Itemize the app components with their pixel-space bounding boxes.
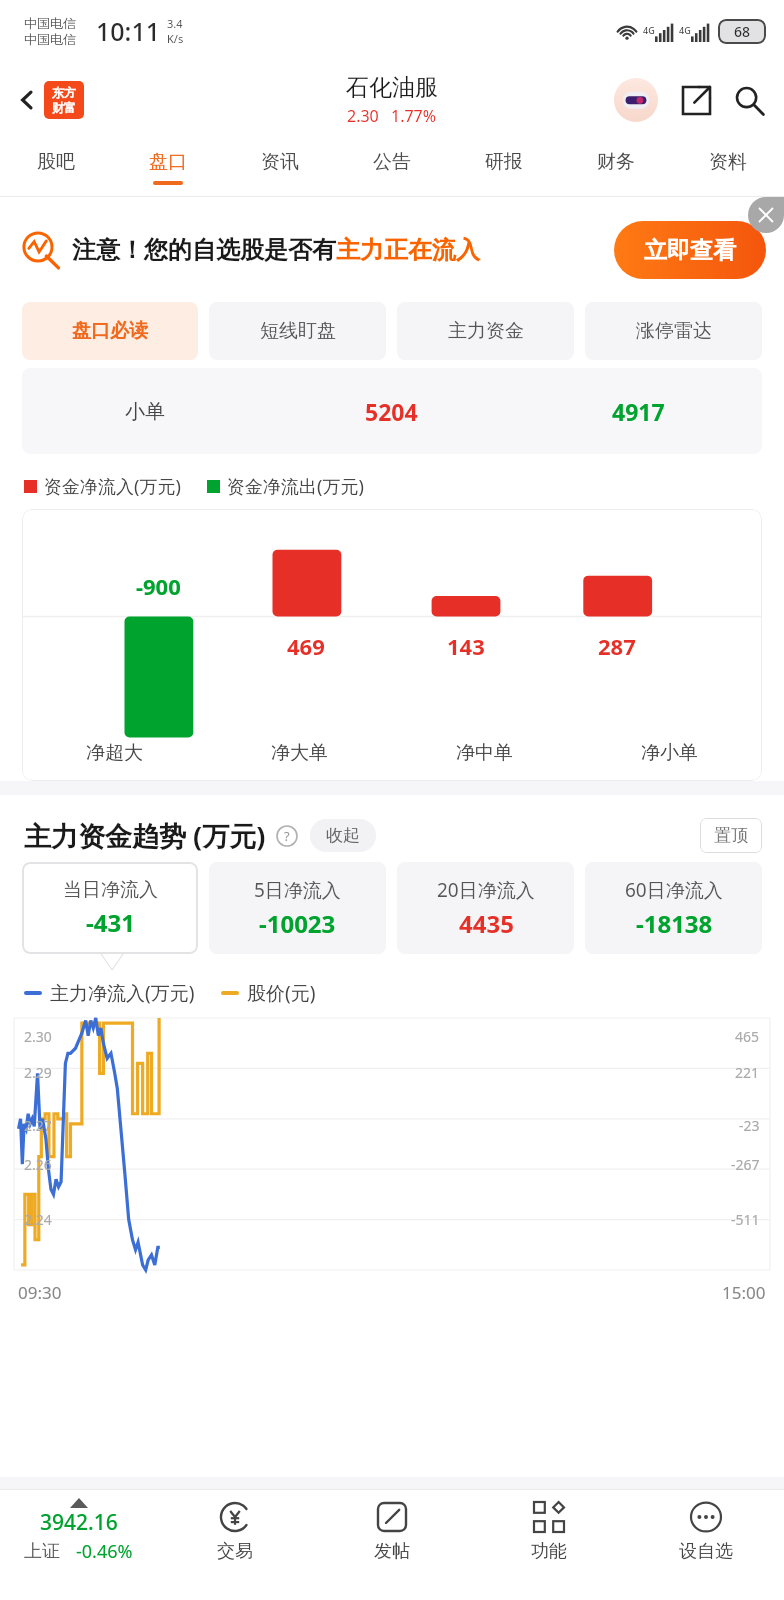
staticText: -900 xyxy=(136,571,181,601)
button[interactable]: 盘口必读 xyxy=(22,302,198,360)
staticText: 5日净流入 xyxy=(254,877,341,903)
button[interactable]: 短线盯盘 xyxy=(209,302,386,360)
staticText: -267 xyxy=(731,1155,760,1174)
staticText: K/s xyxy=(167,31,184,46)
staticText: 资讯 xyxy=(261,150,299,174)
staticText: 60日净流入 xyxy=(625,877,723,903)
staticText: 3.4 xyxy=(167,16,183,31)
staticText: 4435 xyxy=(459,907,514,940)
staticText: 注意！您的自选股是否有 xyxy=(72,235,336,265)
staticText: 财务 xyxy=(597,150,635,174)
staticText: 2.30 xyxy=(347,105,379,127)
button[interactable]: 发帖 xyxy=(313,1490,470,1600)
button[interactable]: 3942.16 xyxy=(0,1490,156,1600)
staticText: 2.30 xyxy=(24,1027,52,1046)
button[interactable]: 盘口 xyxy=(112,138,224,196)
button[interactable]: 东方 xyxy=(44,81,84,119)
button[interactable]: Close xyxy=(748,197,784,233)
staticText: 研报 xyxy=(485,150,523,174)
staticText: 主力资金 xyxy=(448,319,524,343)
staticText: 功能 xyxy=(531,1540,567,1563)
staticText: 收起 xyxy=(326,825,360,846)
staticText: 资料 xyxy=(709,150,747,174)
staticText: -23 xyxy=(739,1116,760,1135)
staticText: 中国电信 xyxy=(24,31,76,47)
staticText: 公告 xyxy=(373,150,411,174)
staticText: 2.24 xyxy=(24,1210,52,1229)
staticText: 4917 xyxy=(612,396,665,427)
staticText: ? xyxy=(284,827,290,845)
staticText: 股价(元) xyxy=(247,980,316,1006)
staticText: 469 xyxy=(287,631,325,661)
staticText: 涨停雷达 xyxy=(636,319,712,343)
staticText: -18138 xyxy=(636,907,713,940)
staticText: 当日净流入 xyxy=(63,878,158,902)
button[interactable]: 立即查看 xyxy=(614,221,766,279)
button[interactable]: 主力资金 xyxy=(397,302,574,360)
button[interactable]: 资讯 xyxy=(224,138,336,196)
staticText: 盘口 xyxy=(149,150,187,174)
staticText: -0.46% xyxy=(76,1539,133,1564)
button[interactable]: 注意！您的自选股是否有 xyxy=(22,197,766,302)
button[interactable]: 功能 xyxy=(470,1490,627,1600)
button[interactable]: 研报 xyxy=(448,138,560,196)
staticText: 上证 xyxy=(24,1540,60,1563)
staticText: 交易 xyxy=(217,1540,253,1563)
staticText: 东方 xyxy=(52,85,76,100)
button[interactable]: Search xyxy=(728,79,770,121)
button[interactable]: 公告 xyxy=(336,138,448,196)
button[interactable]: 小单 xyxy=(22,368,762,454)
staticText: 盘口必读 xyxy=(72,319,148,343)
staticText: 小单 xyxy=(125,399,165,424)
staticText: 5204 xyxy=(365,396,418,427)
staticText: 2.29 xyxy=(24,1063,52,1082)
staticText: 短线盯盘 xyxy=(260,319,336,343)
staticText: 主力净流入(万元) xyxy=(50,980,195,1006)
button[interactable]: 收起 xyxy=(310,819,376,852)
button[interactable]: 财务 xyxy=(560,138,672,196)
button[interactable]: 20日净流入 xyxy=(397,862,574,954)
staticText: 财富 xyxy=(52,100,76,115)
button[interactable]: 资料 xyxy=(672,138,784,196)
staticText: -431 xyxy=(86,906,135,939)
staticText: 4G xyxy=(643,24,655,36)
button[interactable]: 股吧 xyxy=(0,138,112,196)
staticText: 主力正在流入 xyxy=(336,235,480,265)
staticText: 净超大 xyxy=(86,741,143,765)
staticText: 净大单 xyxy=(271,741,328,765)
staticText: 净小单 xyxy=(641,741,698,765)
staticText: 2.26 xyxy=(24,1155,52,1174)
staticText: 465 xyxy=(735,1027,760,1046)
staticText: 143 xyxy=(447,631,485,661)
button[interactable]: 60日净流入 xyxy=(585,862,762,954)
staticText: 净中单 xyxy=(456,741,513,765)
staticText: 2.27 xyxy=(24,1116,52,1135)
button[interactable]: Help xyxy=(276,825,298,847)
staticText: 287 xyxy=(598,631,636,661)
button[interactable]: 交易 xyxy=(156,1490,313,1600)
staticText: 设自选 xyxy=(679,1540,733,1563)
staticText: 15:00 xyxy=(722,1281,766,1304)
staticText: 3942.16 xyxy=(40,1508,118,1537)
button[interactable]: 设自选 xyxy=(627,1490,784,1600)
staticText: 资金净流出(万元) xyxy=(227,474,364,499)
staticText: 20日净流入 xyxy=(437,877,535,903)
other: Back xyxy=(16,89,38,111)
staticText: 221 xyxy=(735,1063,760,1082)
button[interactable]: 置顶 xyxy=(700,818,762,853)
button[interactable]: 5日净流入 xyxy=(209,862,386,954)
button[interactable]: AI assistant xyxy=(614,78,658,122)
button[interactable]: 涨停雷达 xyxy=(585,302,762,360)
staticText: 1.77% xyxy=(391,105,437,127)
staticText: 4G xyxy=(679,24,691,36)
staticText: 主力资金趋势 (万元) xyxy=(24,817,266,854)
button[interactable]: Back xyxy=(10,83,44,117)
staticText: 发帖 xyxy=(374,1540,410,1563)
staticText: 置顶 xyxy=(714,825,748,846)
staticText: 资金净流入(万元) xyxy=(44,474,181,499)
staticText: 10:11 xyxy=(96,14,161,48)
staticText: 立即查看 xyxy=(644,236,736,265)
staticText: -511 xyxy=(731,1210,760,1229)
button[interactable]: 当日净流入 xyxy=(22,862,198,954)
button[interactable]: Share xyxy=(676,80,716,120)
